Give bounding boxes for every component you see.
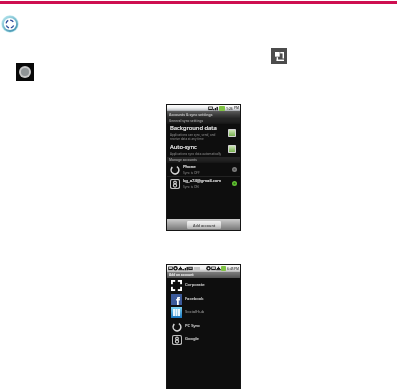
button[interactable]: Add account [187, 221, 221, 229]
staticText: Applications can sync, send, and receive… [170, 133, 216, 141]
button[interactable]: Background data [167, 124, 240, 141]
button[interactable]: Phone [167, 163, 240, 176]
button[interactable]: Missing image [271, 48, 287, 64]
staticText: Phone [183, 164, 196, 170]
staticText: Add an account [169, 273, 194, 277]
staticText: PC Sync [185, 323, 200, 329]
button[interactable]: Google [167, 332, 240, 346]
staticText: 6:45 [227, 266, 234, 271]
staticText: Add account [193, 223, 216, 228]
staticText: PM [234, 267, 239, 271]
staticText: Facebook [185, 296, 204, 302]
staticText: Accounts & sync settings [169, 112, 213, 117]
staticText: Applications sync data automatically [170, 152, 222, 156]
staticText: Sync is ON [183, 185, 199, 189]
staticText: Google [185, 336, 199, 342]
staticText: SocialHub [185, 309, 205, 315]
staticText: Auto-sync [170, 143, 197, 151]
button[interactable]: kg_a74@gmail.com [167, 177, 240, 190]
button[interactable]: PC Sync [167, 319, 240, 333]
staticText: Manage accounts [169, 158, 197, 162]
staticText: Background data [170, 124, 217, 132]
staticText: Sync is OFF [183, 171, 200, 175]
staticText: PM [234, 106, 239, 110]
staticText: General sync settings [169, 119, 204, 123]
button[interactable]: SocialHub [167, 305, 240, 319]
button[interactable]: f [167, 292, 240, 306]
button[interactable]: Sync [1, 15, 19, 33]
staticText: Corporate [185, 282, 205, 288]
staticText: kg_a74@gmail.com [183, 178, 222, 184]
staticText: f [176, 294, 180, 305]
button[interactable]: Sync status icon [16, 63, 34, 81]
staticText: 1:26 [226, 106, 233, 111]
button[interactable]: Auto-sync [167, 141, 240, 157]
button[interactable]: Corporate [167, 278, 240, 292]
